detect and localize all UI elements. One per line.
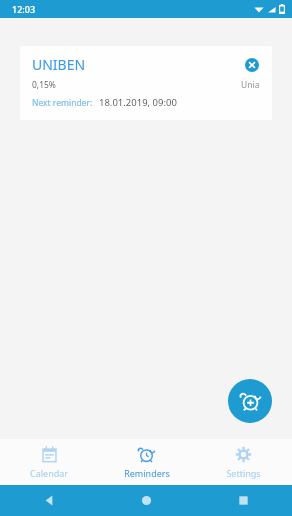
staticText: Unia <box>241 79 260 91</box>
button[interactable]: Delete reminder <box>242 55 262 75</box>
staticText: Next reminder: <box>32 97 93 109</box>
button[interactable]: UNIBEN <box>20 46 272 120</box>
staticText: Settings <box>226 467 261 479</box>
staticText: UNIBEN <box>32 55 86 74</box>
button[interactable]: Reminders <box>98 439 195 485</box>
button[interactable]: Recent apps <box>195 485 292 516</box>
button[interactable]: Settings <box>195 439 292 485</box>
button[interactable]: Back <box>0 485 98 516</box>
staticText: 0,15% <box>32 79 56 91</box>
button[interactable]: Home <box>98 485 195 516</box>
staticText: 12:03 <box>12 3 36 15</box>
staticText: Calendar <box>30 467 68 479</box>
button[interactable]: Calendar <box>0 439 98 485</box>
staticText: 18.01.2019, 09:00 <box>99 96 177 109</box>
staticText: Reminders <box>124 467 170 479</box>
button[interactable]: Add reminder <box>228 379 272 423</box>
